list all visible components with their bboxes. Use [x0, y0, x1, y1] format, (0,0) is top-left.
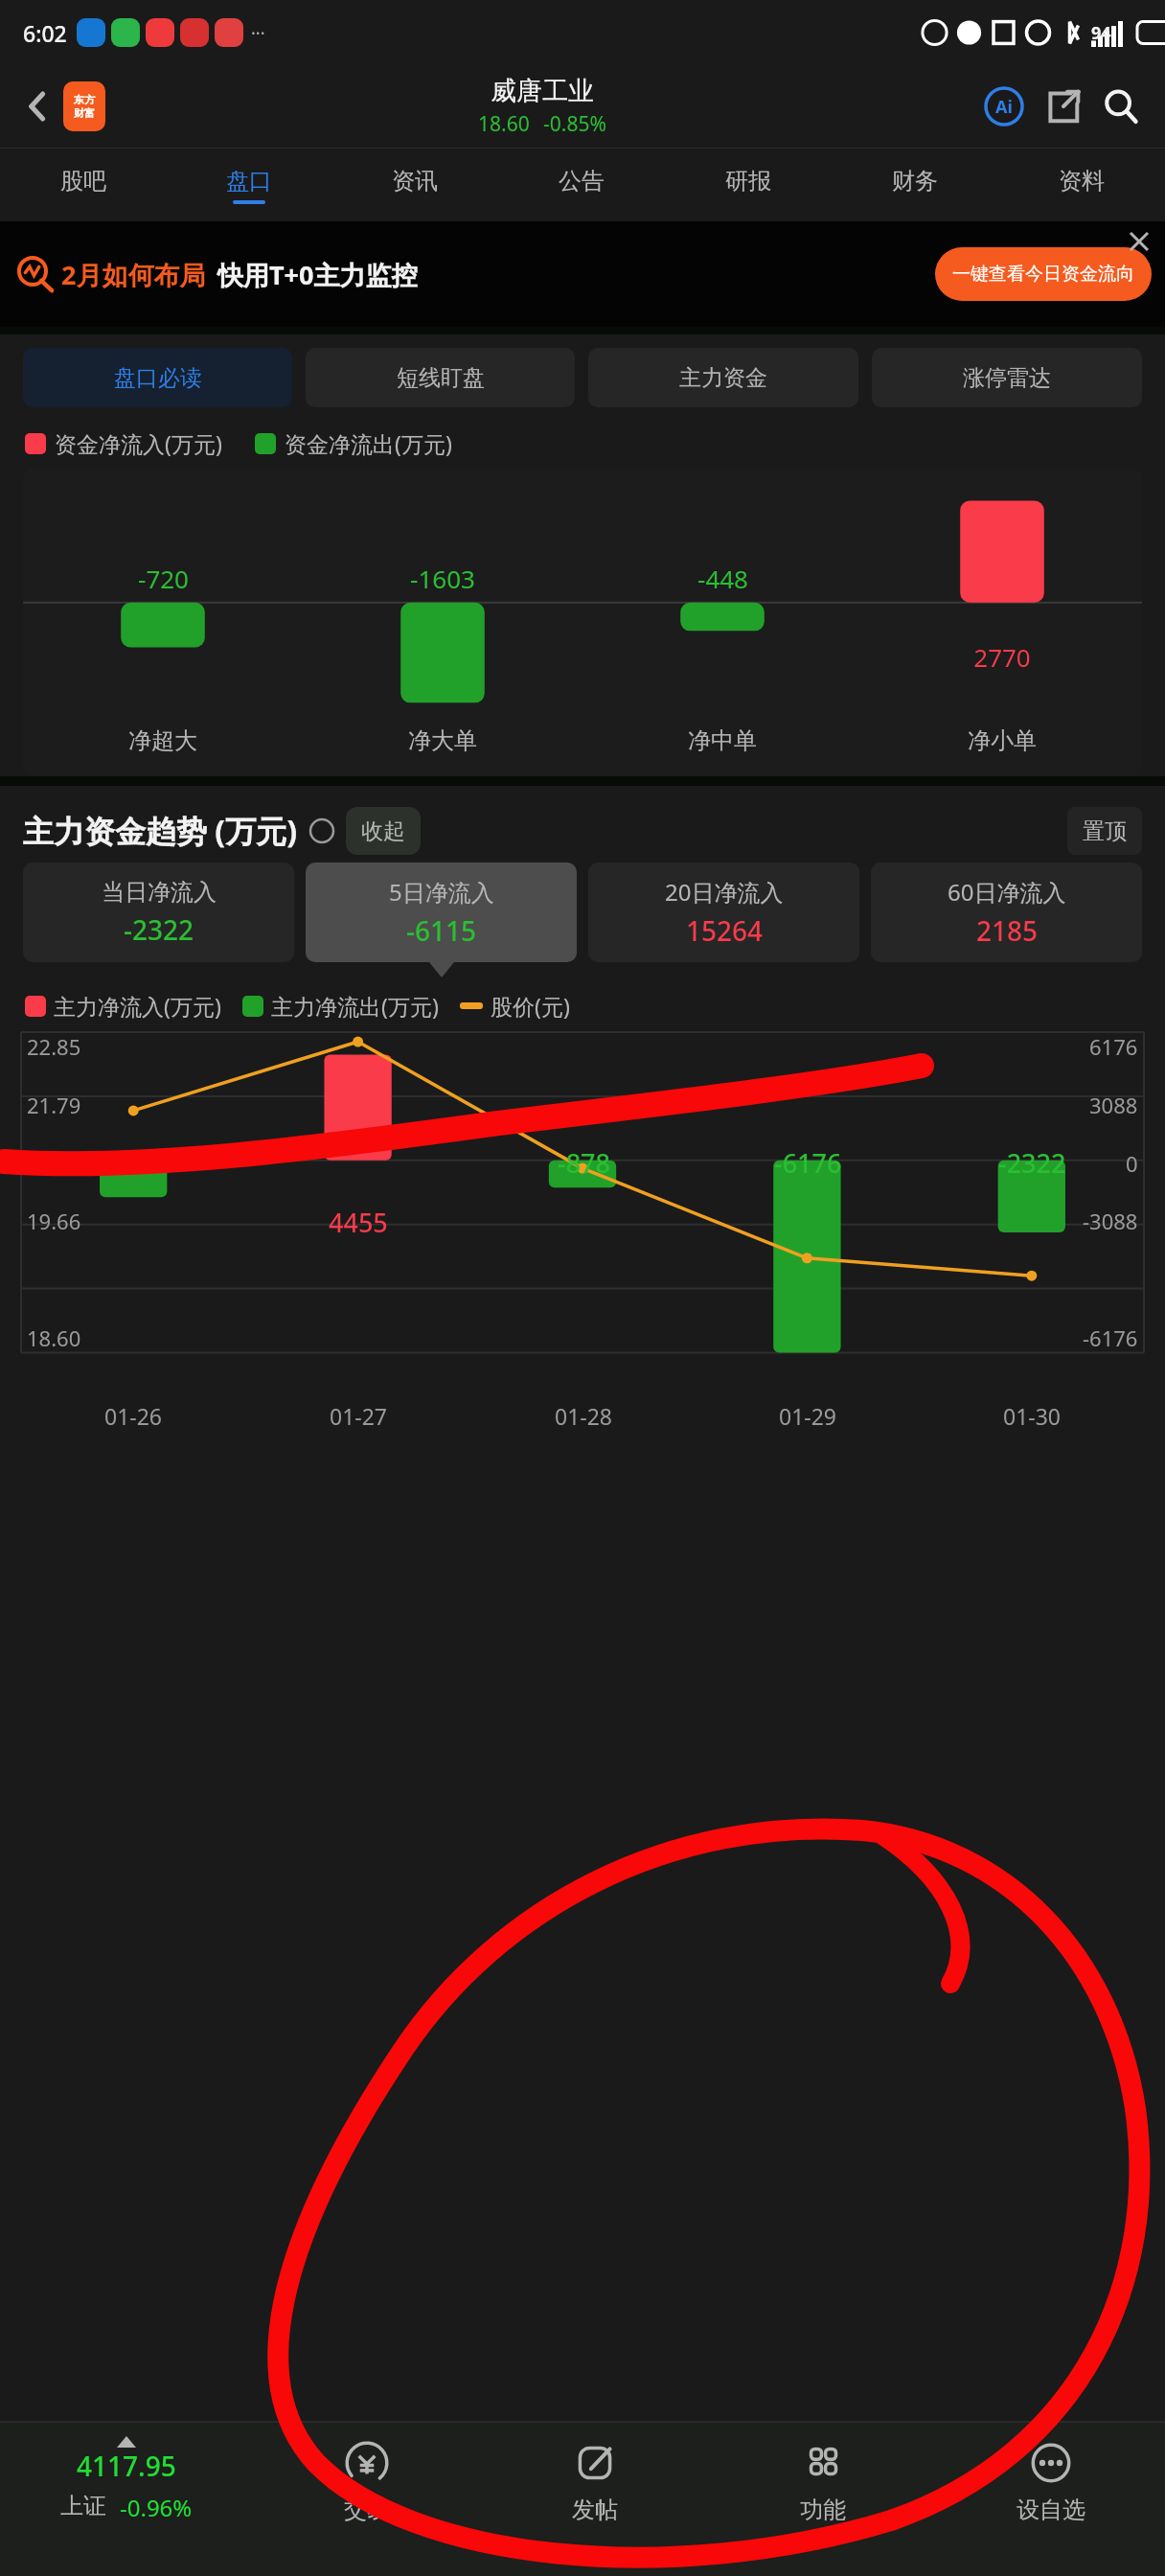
staticText: 15264 — [686, 912, 764, 949]
staticText: 威唐工业 — [491, 75, 594, 107]
button[interactable]: 收起 — [346, 807, 421, 855]
button[interactable]: Back — [13, 81, 63, 131]
staticText: 2770 — [973, 640, 1031, 674]
staticText: 22.85 — [27, 1032, 81, 1061]
staticText: 净中单 — [688, 726, 757, 755]
staticText: 设自选 — [1017, 2495, 1085, 2524]
staticText: 净小单 — [968, 726, 1037, 755]
button[interactable]: 东方 — [63, 81, 105, 131]
staticText: 一键查看今日资金流向 — [952, 263, 1134, 286]
button[interactable]: 涨停雷达 — [872, 348, 1142, 407]
button[interactable]: 盘口必读 — [23, 348, 292, 407]
staticText: -0.85% — [543, 110, 606, 138]
staticText: 当日净流入 — [102, 878, 217, 907]
button[interactable]: 研报 — [665, 149, 832, 221]
staticText: 0 — [1126, 1149, 1138, 1178]
staticText: 主力净流入(万元) — [54, 991, 221, 1021]
button[interactable]: 公告 — [498, 149, 665, 221]
staticText: 交易 — [344, 2495, 390, 2524]
staticText: 快用T+0主力监控 — [217, 257, 418, 292]
staticText: 主力资金趋势 (万元) — [23, 810, 298, 852]
staticText: -1194 — [100, 1145, 168, 1181]
staticText: 01-26 — [104, 1401, 163, 1431]
staticText: 01-30 — [1003, 1401, 1062, 1431]
staticText: 研报 — [725, 167, 771, 195]
staticText: 盘口必读 — [114, 364, 202, 392]
staticText: 01-28 — [555, 1401, 613, 1431]
staticText: 6176 — [1089, 1032, 1138, 1061]
staticText: -448 — [697, 562, 748, 595]
staticText: -2322 — [998, 1145, 1066, 1181]
staticText: -878 — [558, 1145, 610, 1181]
button[interactable]: AI — [979, 81, 1029, 131]
button[interactable]: 设自选 — [937, 2423, 1165, 2576]
staticText: 资金净流出(万元) — [285, 428, 452, 458]
staticText: 20.73 — [27, 1149, 81, 1178]
staticText: -720 — [138, 562, 189, 595]
staticText: 6:02 — [23, 18, 67, 48]
button[interactable]: 资料 — [998, 149, 1165, 221]
staticText: 主力资金 — [679, 364, 767, 392]
button[interactable]: 功能 — [709, 2423, 937, 2576]
staticText: 资讯 — [392, 167, 438, 195]
staticText: 上证 — [60, 2492, 106, 2520]
staticText: 21.79 — [27, 1091, 81, 1119]
staticText: 资金净流入(万元) — [55, 428, 222, 458]
button[interactable]: Search — [1096, 81, 1146, 131]
staticText: 60日净流入 — [948, 876, 1066, 908]
button[interactable]: 一键查看今日资金流向 — [935, 247, 1152, 301]
button[interactable]: Share — [1039, 81, 1088, 131]
button[interactable]: 60日净流入 — [871, 862, 1142, 962]
button[interactable]: 置顶 — [1067, 807, 1142, 855]
button[interactable]: 盘口 — [166, 149, 331, 221]
button[interactable]: 交易 — [252, 2423, 481, 2576]
staticText: 公告 — [559, 167, 605, 195]
staticText: 财富 — [74, 106, 95, 120]
staticText: 3088 — [1089, 1091, 1138, 1119]
staticText: -6176 — [774, 1145, 842, 1181]
staticText: 资料 — [1059, 167, 1105, 195]
button[interactable]: 20日净流入 — [588, 862, 859, 962]
staticText: 盘口 — [226, 167, 272, 195]
staticText: 功能 — [800, 2495, 846, 2524]
staticText: Ai — [995, 95, 1013, 119]
staticText: 2185 — [976, 912, 1039, 949]
staticText: 置顶 — [1083, 817, 1127, 845]
staticText: -6176 — [1083, 1323, 1138, 1352]
staticText: -6115 — [406, 912, 477, 949]
staticText: 净大单 — [408, 726, 477, 755]
staticText: 20日净流入 — [665, 876, 784, 908]
staticText: 发帖 — [572, 2495, 618, 2524]
staticText: 19.66 — [27, 1207, 81, 1235]
staticText: ··· — [251, 21, 265, 45]
staticText: -0.96% — [120, 2492, 193, 2523]
staticText: 5日净流入 — [389, 876, 494, 908]
button[interactable]: 4117.95 — [0, 2423, 252, 2576]
staticText: -1603 — [410, 562, 475, 595]
button[interactable]: 发帖 — [481, 2423, 709, 2576]
staticText: -2322 — [124, 911, 194, 948]
staticText: 主力净流出(万元) — [271, 991, 439, 1021]
button[interactable]: 财务 — [832, 149, 998, 221]
staticText: 18.60 — [478, 110, 530, 138]
staticText: 东方 — [74, 93, 95, 106]
staticText: 财务 — [892, 167, 938, 195]
button[interactable]: 主力资金 — [588, 348, 858, 407]
staticText: 4117.95 — [77, 2448, 176, 2484]
staticText: 18.60 — [27, 1323, 81, 1352]
staticText: 收起 — [361, 817, 405, 845]
button[interactable]: 当日净流入 — [23, 862, 294, 962]
button[interactable]: 资讯 — [331, 149, 498, 221]
staticText: 股吧 — [60, 167, 106, 195]
button[interactable]: 短线盯盘 — [306, 348, 575, 407]
staticText: 短线盯盘 — [397, 364, 485, 392]
button[interactable]: 5日净流入 — [306, 862, 577, 962]
button[interactable]: 股吧 — [0, 149, 166, 221]
staticText: 01-29 — [779, 1401, 837, 1431]
staticText: 涨停雷达 — [963, 364, 1051, 392]
staticText: 净超大 — [128, 726, 197, 755]
staticText: 2月如何布局 — [61, 257, 206, 292]
staticText: 94 — [1091, 21, 1111, 45]
staticText: 4455 — [329, 1205, 388, 1240]
button[interactable]: Close — [1123, 225, 1155, 258]
